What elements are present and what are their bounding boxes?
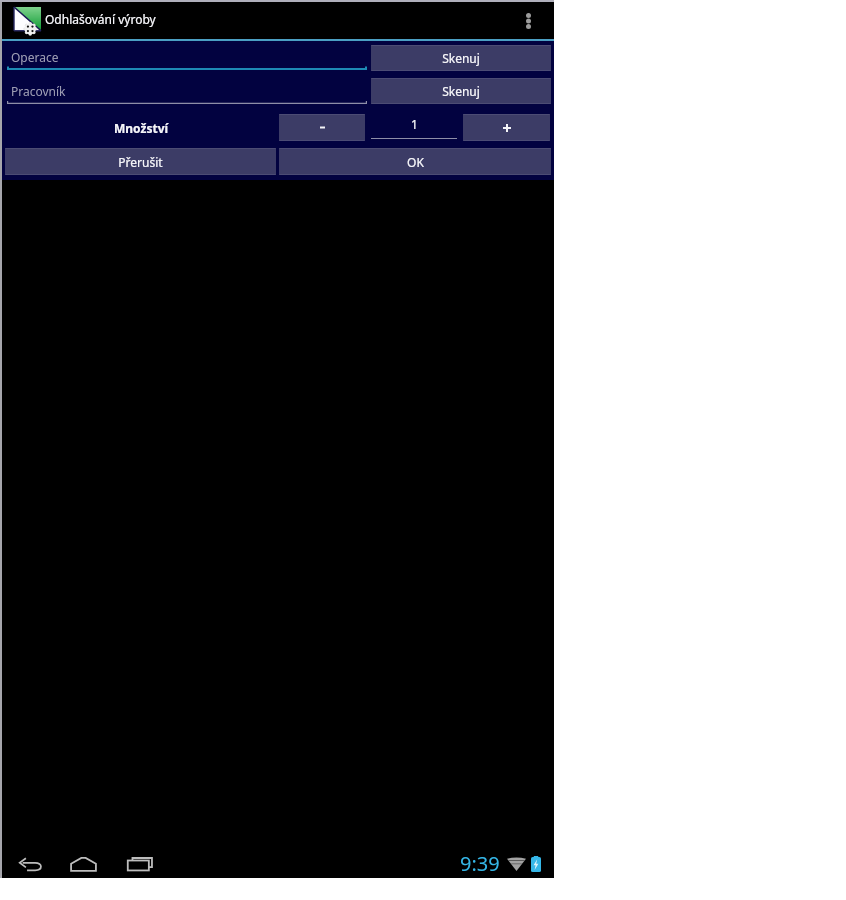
staticText: OK xyxy=(407,154,424,170)
staticText: 1 xyxy=(411,116,418,132)
staticText: Operace xyxy=(11,49,59,65)
button[interactable]: Skenuj xyxy=(371,78,551,104)
button[interactable]: Increase quantity xyxy=(463,114,550,141)
staticText: Skenuj xyxy=(442,83,480,99)
staticText: Skenuj xyxy=(442,50,480,66)
button[interactable]: Home xyxy=(62,847,104,882)
staticText: Množství xyxy=(114,120,169,136)
button[interactable]: Přerušit xyxy=(5,148,276,175)
button[interactable]: Pracovník xyxy=(3,75,367,109)
button[interactable]: OK xyxy=(279,148,551,175)
staticText: Přerušit xyxy=(118,154,163,170)
button[interactable]: Skenuj xyxy=(371,45,551,71)
button[interactable]: More options xyxy=(511,0,545,38)
button[interactable]: Recents xyxy=(119,846,161,881)
staticText: 9:39 xyxy=(460,850,500,877)
button[interactable]: Operace xyxy=(3,41,367,75)
button[interactable]: Decrease quantity xyxy=(279,114,365,141)
button[interactable]: Back xyxy=(10,847,50,882)
staticText: Odhlašování výroby xyxy=(45,11,156,27)
staticText: Pracovník xyxy=(11,83,66,99)
